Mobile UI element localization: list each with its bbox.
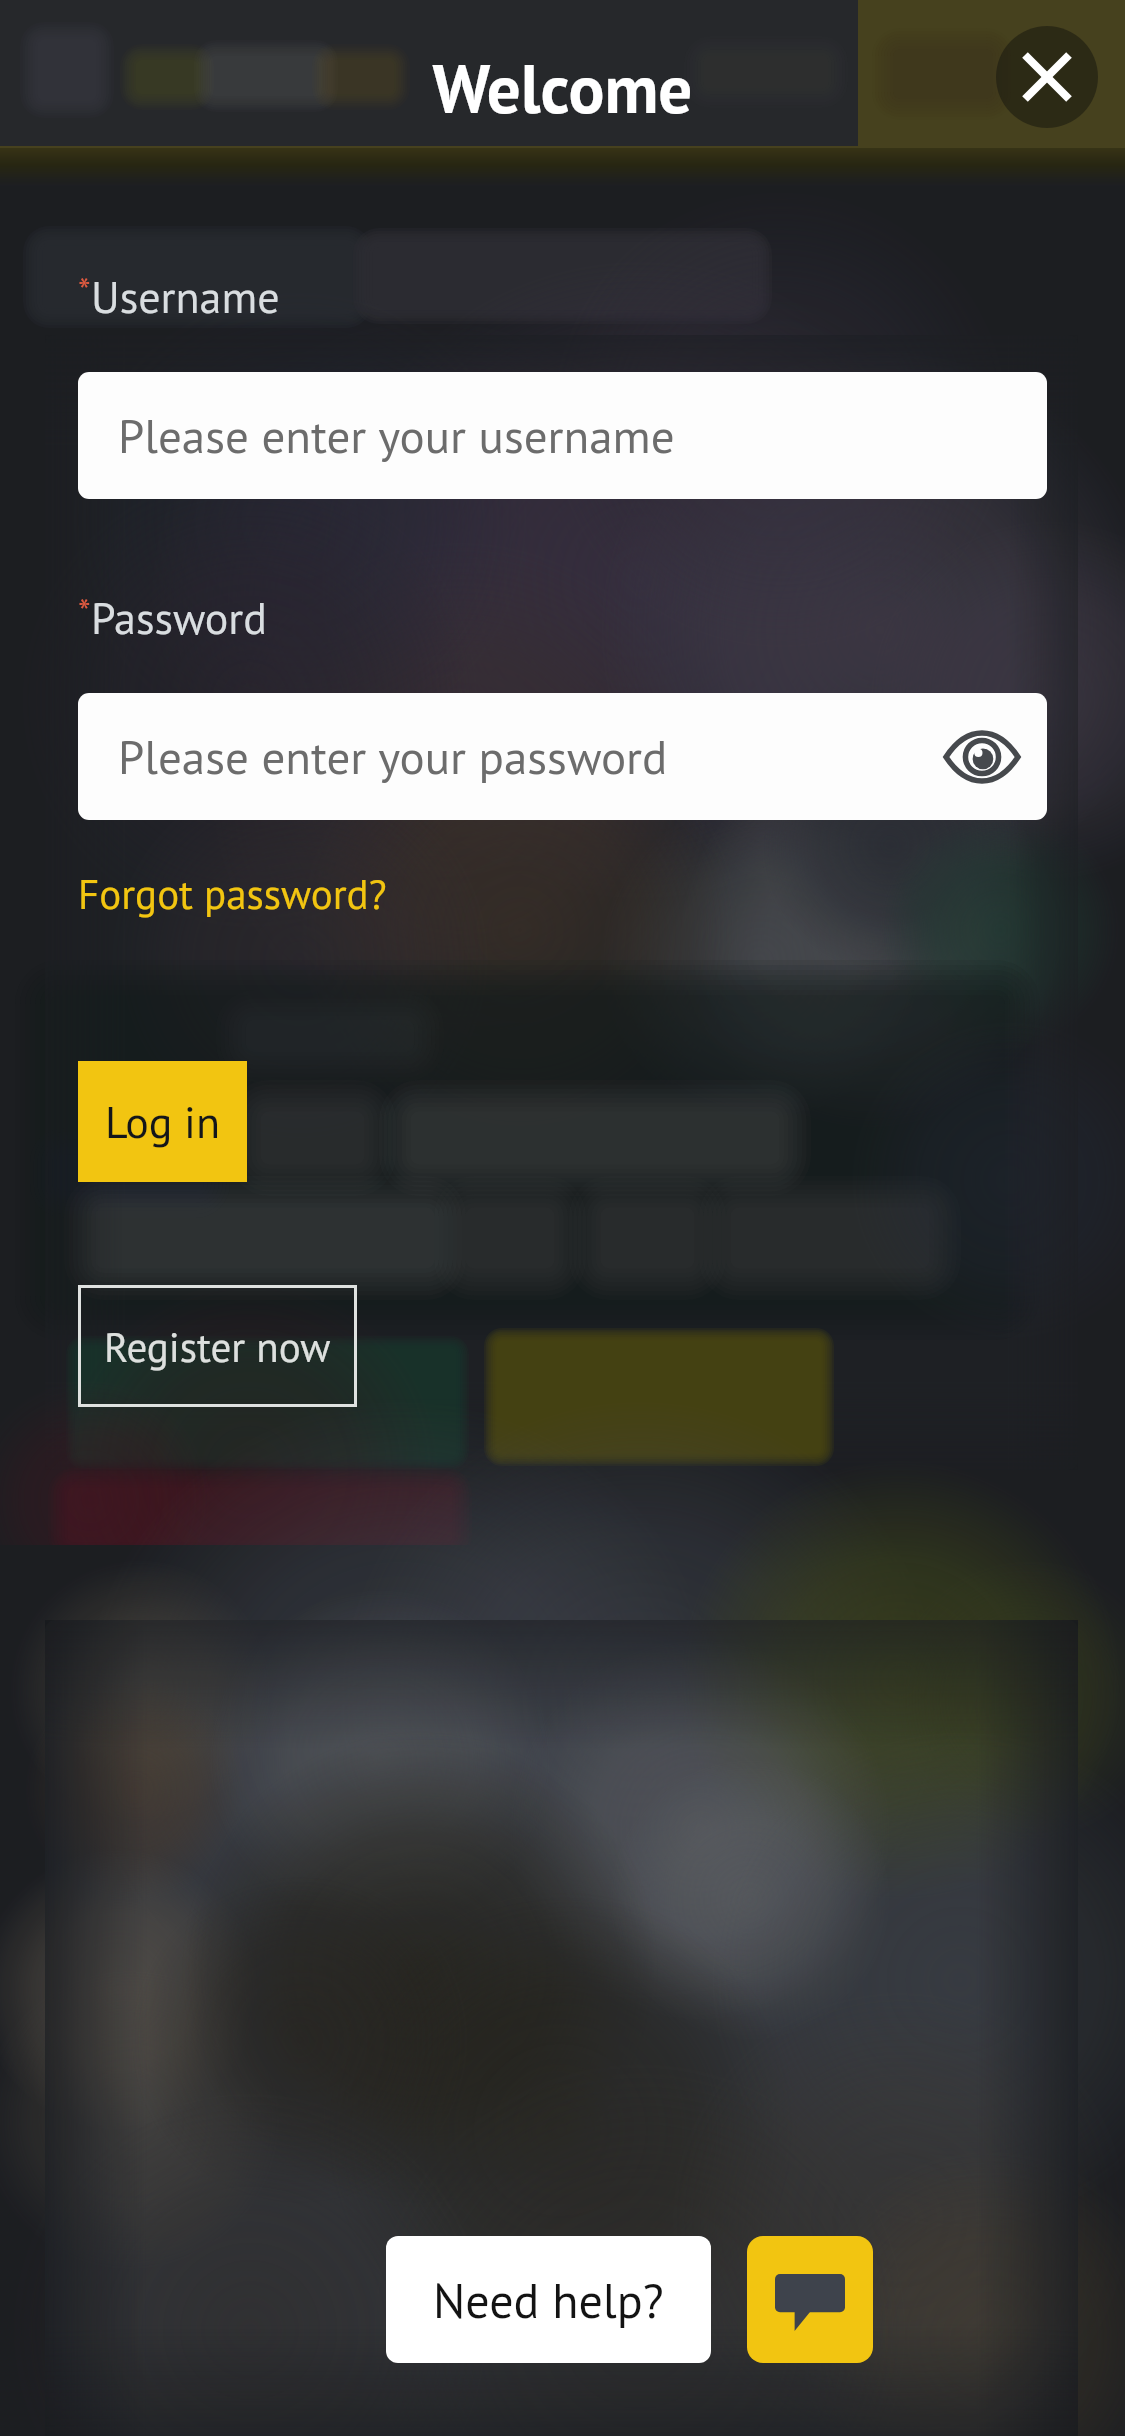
staticText: Welcome xyxy=(0,45,1125,132)
button[interactable]: Close xyxy=(996,26,1098,128)
staticText: Register now xyxy=(104,1320,331,1373)
button[interactable]: Open chat support xyxy=(747,2236,873,2363)
button[interactable]: Please enter your password xyxy=(78,693,1047,820)
staticText: Log in xyxy=(105,1093,220,1150)
staticText: Forgot password? xyxy=(78,867,387,920)
button[interactable]: Log in xyxy=(78,1061,247,1182)
button[interactable]: Please enter your username xyxy=(78,372,1047,499)
button[interactable]: Register now xyxy=(78,1285,357,1407)
staticText: Username xyxy=(91,268,280,325)
staticText: Password xyxy=(91,589,267,646)
button[interactable]: Show password xyxy=(946,733,1018,781)
button[interactable]: Forgot password? xyxy=(78,867,387,920)
button[interactable]: Need help? xyxy=(386,2236,711,2363)
staticText: Please enter your password xyxy=(118,726,668,787)
staticText: * xyxy=(78,268,91,315)
staticText: Please enter your username xyxy=(118,405,675,466)
staticText: * xyxy=(78,589,91,636)
staticText: Need help? xyxy=(433,2269,664,2331)
